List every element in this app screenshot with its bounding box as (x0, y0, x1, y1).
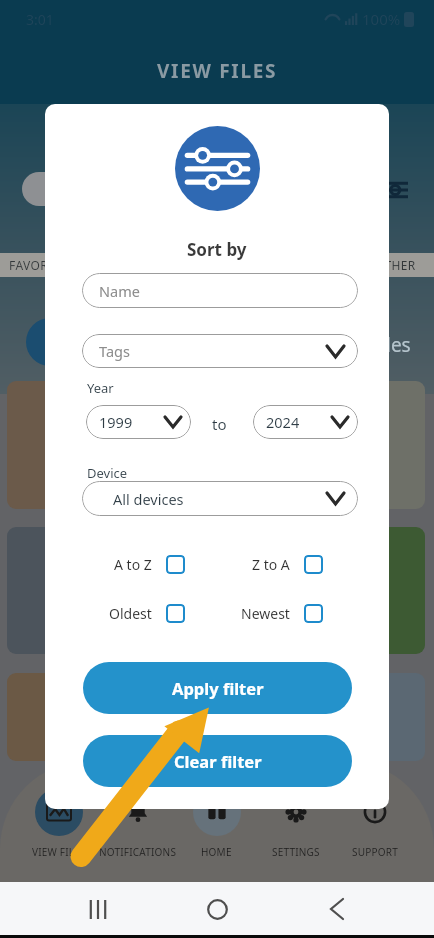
button[interactable]: SUPPORT (335, 783, 414, 859)
button[interactable]: Name (82, 273, 358, 308)
button[interactable]: Home (195, 887, 239, 931)
button[interactable]: Clear filter (83, 735, 352, 787)
staticText: Z to A (252, 555, 290, 574)
button[interactable]: Recents (76, 887, 120, 931)
staticText: 100% (362, 9, 401, 29)
staticText: 2024 (266, 412, 300, 432)
staticText: HOME (201, 845, 232, 859)
button[interactable]: HOME (177, 783, 256, 859)
button[interactable]: VIEW FILES (20, 783, 98, 859)
button[interactable]: NOTIFICATIONS (98, 783, 177, 859)
button[interactable]: Z to A (231, 548, 323, 580)
button[interactable]: SETTINGS (256, 783, 335, 859)
button[interactable]: 1999 (86, 405, 191, 439)
button[interactable]: A to Z (93, 548, 185, 580)
staticText: FAVORITES (9, 257, 74, 273)
staticText: A to Z (114, 555, 152, 574)
staticText: to (212, 414, 227, 434)
staticText: VIEW FILES (32, 845, 86, 859)
button[interactable]: Tags (82, 334, 358, 368)
staticText: 3:01 (26, 10, 54, 29)
staticText: Year (87, 379, 114, 397)
staticText: Device (87, 464, 128, 482)
button[interactable]: Oldest (93, 597, 185, 629)
staticText: Apply filter (172, 677, 264, 699)
button[interactable]: 2024 (253, 405, 358, 439)
staticText: VIEW FILES (157, 58, 278, 84)
staticText: Oldest (109, 604, 152, 623)
staticText: 1999 (99, 412, 133, 432)
button[interactable]: All devices (82, 481, 358, 516)
staticText: SETTINGS (272, 845, 320, 859)
staticText: Newest (241, 604, 290, 623)
staticText: SUPPORT (352, 845, 398, 859)
button[interactable]: Apply filter (83, 662, 352, 714)
staticText: Show all files (296, 332, 411, 358)
staticText: All devices (113, 489, 184, 509)
staticText: Tags (99, 341, 130, 361)
staticText: Sort by (187, 238, 247, 261)
button[interactable]: Back (315, 887, 359, 931)
staticText: OTHER (375, 257, 416, 273)
staticText: NOTIFICATIONS (99, 845, 177, 859)
staticText: Clear filter (174, 750, 262, 772)
staticText: Name (99, 281, 140, 301)
button[interactable]: Newest (231, 597, 323, 629)
